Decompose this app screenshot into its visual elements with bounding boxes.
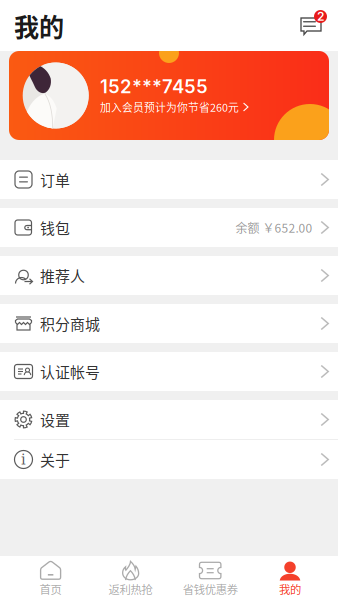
staticText: 认证帐号	[40, 361, 100, 382]
staticText: 关于	[40, 449, 70, 470]
staticText: i	[21, 451, 26, 468]
button[interactable]: Messages	[298, 13, 324, 37]
button[interactable]: 首页	[13, 556, 89, 600]
button[interactable]: 推荐人	[0, 256, 338, 295]
staticText: 返利热抢	[109, 581, 153, 597]
staticText: 首页	[40, 581, 62, 597]
staticText: 推荐人	[40, 265, 85, 286]
button[interactable]: 积分商城	[0, 304, 338, 343]
staticText: 余额 ￥652.00	[235, 219, 312, 236]
staticText: 我的	[14, 7, 64, 44]
staticText: 省钱优惠券	[183, 581, 238, 597]
button[interactable]: 钱包	[0, 208, 338, 247]
staticText: 加入会员预计为你节省260元	[100, 99, 239, 115]
staticText: 积分商城	[40, 313, 100, 334]
staticText: 152***7455	[100, 75, 208, 98]
button[interactable]: 我的	[252, 556, 328, 600]
staticText: 钱包	[40, 217, 70, 238]
button[interactable]: 认证帐号	[0, 352, 338, 391]
button[interactable]: 设置	[0, 400, 338, 439]
staticText: 设置	[40, 409, 70, 430]
staticText: 订单	[40, 169, 70, 190]
button[interactable]: 152***7455	[9, 51, 329, 140]
button[interactable]: i	[0, 440, 338, 479]
staticText: 2	[317, 9, 324, 24]
button[interactable]: 订单	[0, 160, 338, 199]
button[interactable]: 返利热抢	[93, 556, 169, 600]
button[interactable]: 省钱优惠券	[172, 556, 248, 600]
staticText: 我的	[279, 581, 301, 597]
